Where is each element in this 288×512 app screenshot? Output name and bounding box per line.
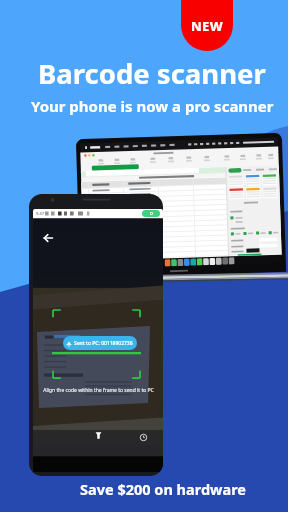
staticText: 9:47 [36, 211, 44, 216]
staticText: Save $200 on hardware [80, 479, 246, 499]
button[interactable]: History [136, 430, 150, 444]
button[interactable]: NEW [181, 0, 233, 51]
staticText: Align the code within the frame to send … [43, 387, 154, 394]
staticText: Barcode scanner [38, 55, 266, 92]
button[interactable]: Flashlight [90, 427, 106, 443]
staticText: Your phone is now a pro scanner [31, 96, 274, 116]
button[interactable]: Back [40, 230, 56, 246]
staticText: D [150, 211, 153, 216]
staticText: NEW [191, 17, 224, 35]
button[interactable]: Sent to PC: 00118902736 [66, 336, 133, 350]
staticText: Sent to PC: 00118902736 [74, 340, 133, 347]
